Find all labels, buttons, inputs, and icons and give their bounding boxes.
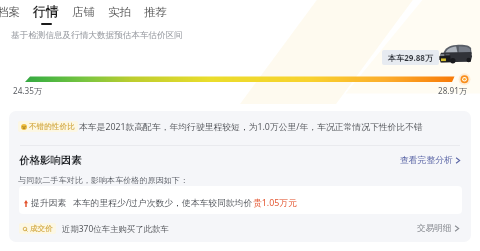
staticText: 本车是2021款高配车，年均行驶里程较短，为1.0万公里/年，车况正常情况下性价… (79, 121, 423, 133)
button[interactable]: 不错的性价比 (9, 111, 471, 145)
staticText: 贵1.05万元 (253, 197, 297, 209)
staticText: 推荐 (144, 5, 167, 19)
staticText: 不错的性价比 (29, 122, 75, 132)
staticText: 档案 (0, 5, 20, 19)
staticText: 与同款二手车对比，影响本车价格的原因如下： (18, 175, 188, 185)
staticText: 本车29.88万 (388, 52, 434, 63)
button[interactable]: 查看完整分析 (400, 155, 461, 166)
button[interactable]: 提升因素 (19, 186, 462, 214)
button[interactable]: 行情 (33, 0, 59, 25)
button[interactable]: 成交价 (9, 218, 471, 238)
staticText: 实拍 (108, 5, 131, 19)
button[interactable]: 店铺 (72, 0, 95, 19)
staticText: 提升因素 (31, 198, 67, 209)
staticText: 24.35万 (13, 85, 43, 96)
button[interactable]: 档案 (0, 0, 20, 19)
staticText: 28.91万 (438, 85, 468, 96)
staticText: 近期370位车主购买了此款车 (62, 223, 169, 234)
staticText: 本车的里程少/过户次数少，使本车较同款均价 (73, 197, 253, 209)
button[interactable]: 推荐 (144, 0, 167, 19)
staticText: 价格影响因素 (19, 154, 82, 167)
staticText: 基于检测信息及行情大数据预估本车估价区间 (11, 30, 183, 41)
button[interactable]: 本车29.88万 (382, 50, 439, 65)
button[interactable]: 实拍 (108, 0, 131, 19)
staticText: 交易明细 (417, 223, 452, 234)
staticText: 店铺 (72, 5, 95, 19)
staticText: 行情 (33, 4, 59, 20)
staticText: 成交价 (30, 224, 53, 234)
other: 本车 (439, 44, 472, 63)
staticText: 查看完整分析 (400, 155, 453, 166)
